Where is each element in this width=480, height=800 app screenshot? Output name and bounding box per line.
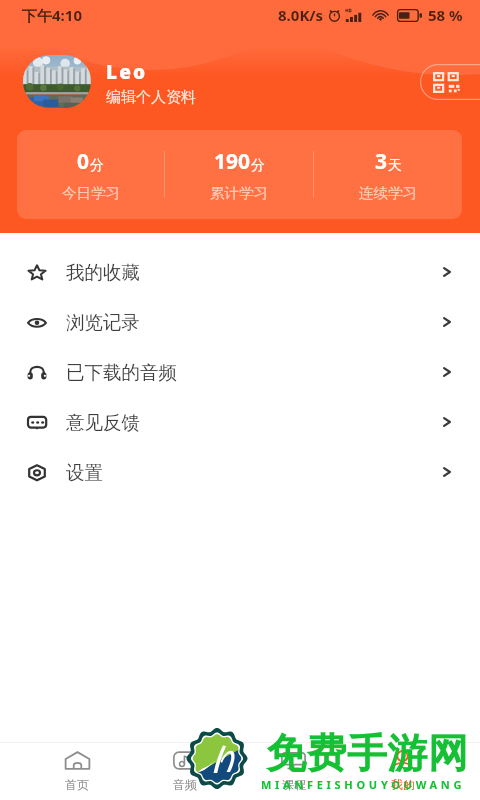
staticText: 3 xyxy=(375,147,388,176)
staticText: 首页 xyxy=(65,777,89,792)
button[interactable]: 浏览记录 xyxy=(0,297,480,347)
staticText: 天 xyxy=(388,157,402,175)
staticText: 我的 xyxy=(391,777,415,792)
staticText: 意见反馈 xyxy=(66,411,140,434)
button[interactable]: 已下载的音频 xyxy=(0,347,480,397)
staticText: MIANFEISHOUYOUWANG xyxy=(261,777,466,792)
staticText: 58 % xyxy=(428,5,463,25)
staticText: 编辑个人资料 xyxy=(106,88,196,107)
staticText: 设置 xyxy=(66,461,103,484)
staticText: 累计学习 xyxy=(210,184,268,202)
button[interactable]: 意见反馈 xyxy=(0,397,480,447)
staticText: 课程 xyxy=(282,777,306,792)
staticText: 分 xyxy=(90,157,104,175)
button[interactable]: 首页 xyxy=(23,743,131,800)
button[interactable]: 我的收藏 xyxy=(0,247,480,297)
staticText: 我的收藏 xyxy=(66,261,140,284)
staticText: 免费手游网 xyxy=(266,728,468,778)
button[interactable]: 设置 xyxy=(0,447,480,497)
staticText: 下午4:10 xyxy=(22,5,82,25)
button[interactable]: Avatar xyxy=(23,55,91,108)
staticText: 8.0K/s xyxy=(278,5,324,25)
button[interactable]: 音频 xyxy=(131,743,239,800)
staticText: 0 xyxy=(77,147,90,176)
button[interactable]: 我的 xyxy=(348,743,457,800)
staticText: 音频 xyxy=(173,777,197,792)
staticText: 浏览记录 xyxy=(66,311,140,334)
staticText: 分 xyxy=(251,157,265,175)
staticText: 连续学习 xyxy=(359,184,417,202)
button[interactable]: 课程 xyxy=(239,743,348,800)
staticText: 今日学习 xyxy=(62,184,120,202)
staticText: 190 xyxy=(214,147,251,176)
staticText: 已下载的音频 xyxy=(66,361,177,384)
button[interactable]: QR code xyxy=(420,64,480,100)
staticText: Leo xyxy=(106,59,148,85)
